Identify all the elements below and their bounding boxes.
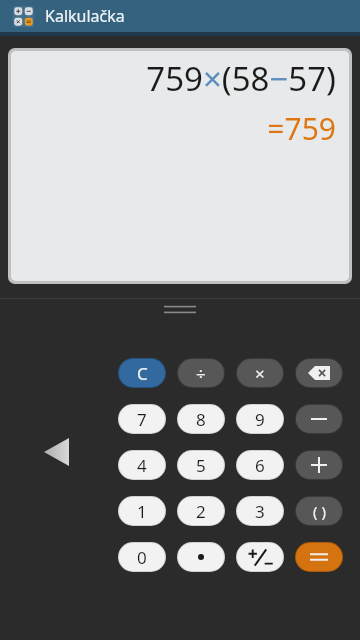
staticText: ( )	[313, 501, 326, 521]
staticText: C	[137, 362, 148, 385]
button[interactable]: 1	[119, 497, 165, 525]
button[interactable]: 2	[178, 497, 224, 525]
button[interactable]: Previous	[34, 430, 78, 474]
button[interactable]: 3	[237, 497, 283, 525]
button[interactable]: 7	[119, 405, 165, 433]
staticText: 5	[196, 454, 206, 477]
staticText: 2	[196, 500, 206, 523]
button[interactable]: 5	[178, 451, 224, 479]
staticText: 6	[255, 454, 265, 477]
staticText: ×	[255, 362, 265, 385]
staticText: 1	[137, 500, 147, 523]
staticText: 3	[255, 500, 265, 523]
button[interactable]: 0	[119, 543, 165, 571]
staticText: Kalkulačka	[45, 5, 125, 27]
button[interactable]: 4	[119, 451, 165, 479]
button[interactable]: ×	[237, 359, 283, 387]
button[interactable]: C	[119, 359, 165, 387]
staticText: 7	[137, 408, 147, 431]
button[interactable]: ( )	[296, 497, 342, 525]
staticText: 9	[255, 408, 265, 431]
button[interactable]: Plus	[296, 451, 342, 479]
button[interactable]: Minus	[296, 405, 342, 433]
button[interactable]: Decimal point	[178, 543, 224, 571]
staticText: 0	[137, 546, 147, 569]
staticText: =759	[11, 108, 336, 149]
staticText: 4	[137, 454, 147, 477]
button[interactable]: Plus minus	[237, 543, 283, 571]
button[interactable]: Backspace	[296, 359, 342, 387]
staticText: ÷	[196, 362, 206, 385]
button[interactable]: 9	[237, 405, 283, 433]
button[interactable]: 6	[237, 451, 283, 479]
staticText: 8	[196, 408, 206, 431]
button[interactable]: 8	[178, 405, 224, 433]
button[interactable]: Equals	[296, 543, 342, 571]
button[interactable]: ÷	[178, 359, 224, 387]
staticText: 759×(58−57)	[11, 56, 336, 101]
